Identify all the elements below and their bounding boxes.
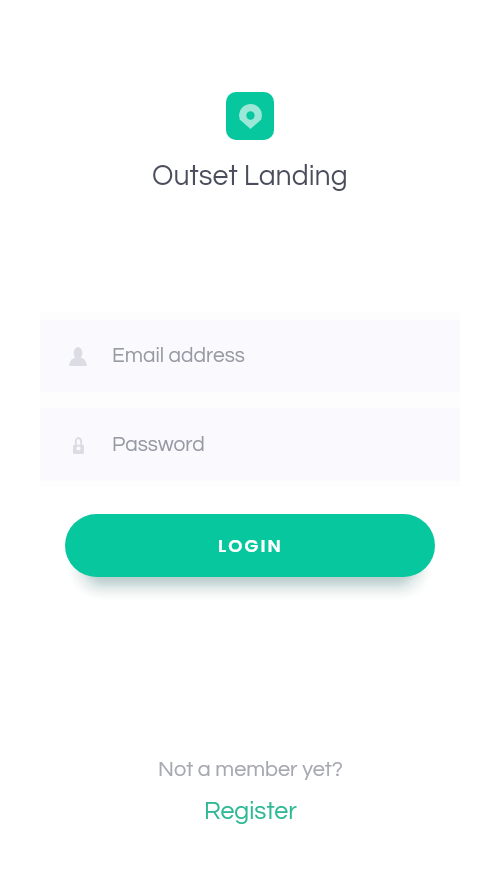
staticText: Email address — [112, 345, 245, 367]
staticText: LOGIN — [218, 533, 283, 558]
button[interactable]: Password — [40, 408, 460, 481]
button[interactable]: LOGIN — [65, 514, 435, 577]
button[interactable]: Register — [204, 798, 297, 824]
button[interactable]: Email address — [40, 320, 460, 392]
staticText: Register — [204, 798, 297, 824]
staticText: Password — [112, 434, 205, 456]
staticText: Outset Landing — [152, 162, 348, 191]
staticText: Not a member yet? — [158, 758, 343, 780]
other: App logo — [226, 92, 274, 140]
